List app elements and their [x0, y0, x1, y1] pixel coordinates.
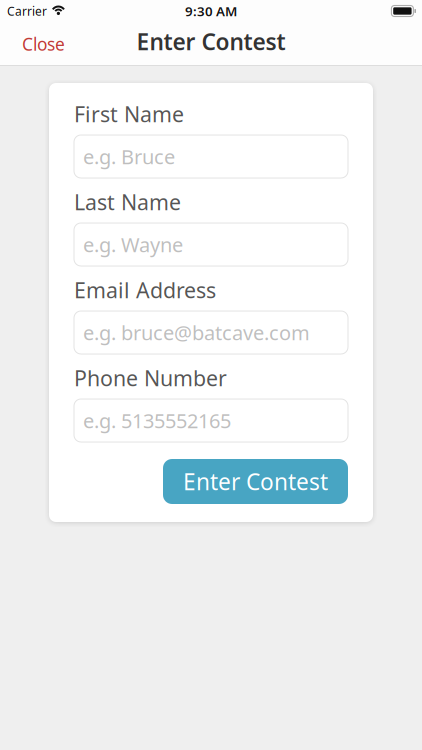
button[interactable]: Last Name: [74, 223, 348, 266]
staticText: Enter Contest: [136, 26, 285, 56]
button[interactable]: Enter Contest: [163, 459, 348, 504]
staticText: Phone Number: [74, 364, 227, 392]
staticText: Close: [22, 32, 65, 55]
staticText: e.g. bruce@batcave.com: [83, 319, 310, 346]
staticText: Enter Contest: [183, 466, 328, 496]
button[interactable]: Email Address: [74, 311, 348, 354]
staticText: e.g. Bruce: [83, 143, 175, 170]
staticText: Last Name: [74, 188, 181, 216]
staticText: Email Address: [74, 276, 216, 304]
staticText: Carrier: [7, 3, 47, 19]
staticText: 9:30 AM: [185, 2, 237, 20]
staticText: e.g. 5135552165: [83, 407, 231, 434]
staticText: First Name: [74, 100, 184, 128]
button[interactable]: Phone Number: [74, 399, 348, 442]
staticText: e.g. Wayne: [83, 231, 183, 258]
button[interactable]: First Name: [74, 135, 348, 178]
button[interactable]: Close: [0, 22, 81, 66]
